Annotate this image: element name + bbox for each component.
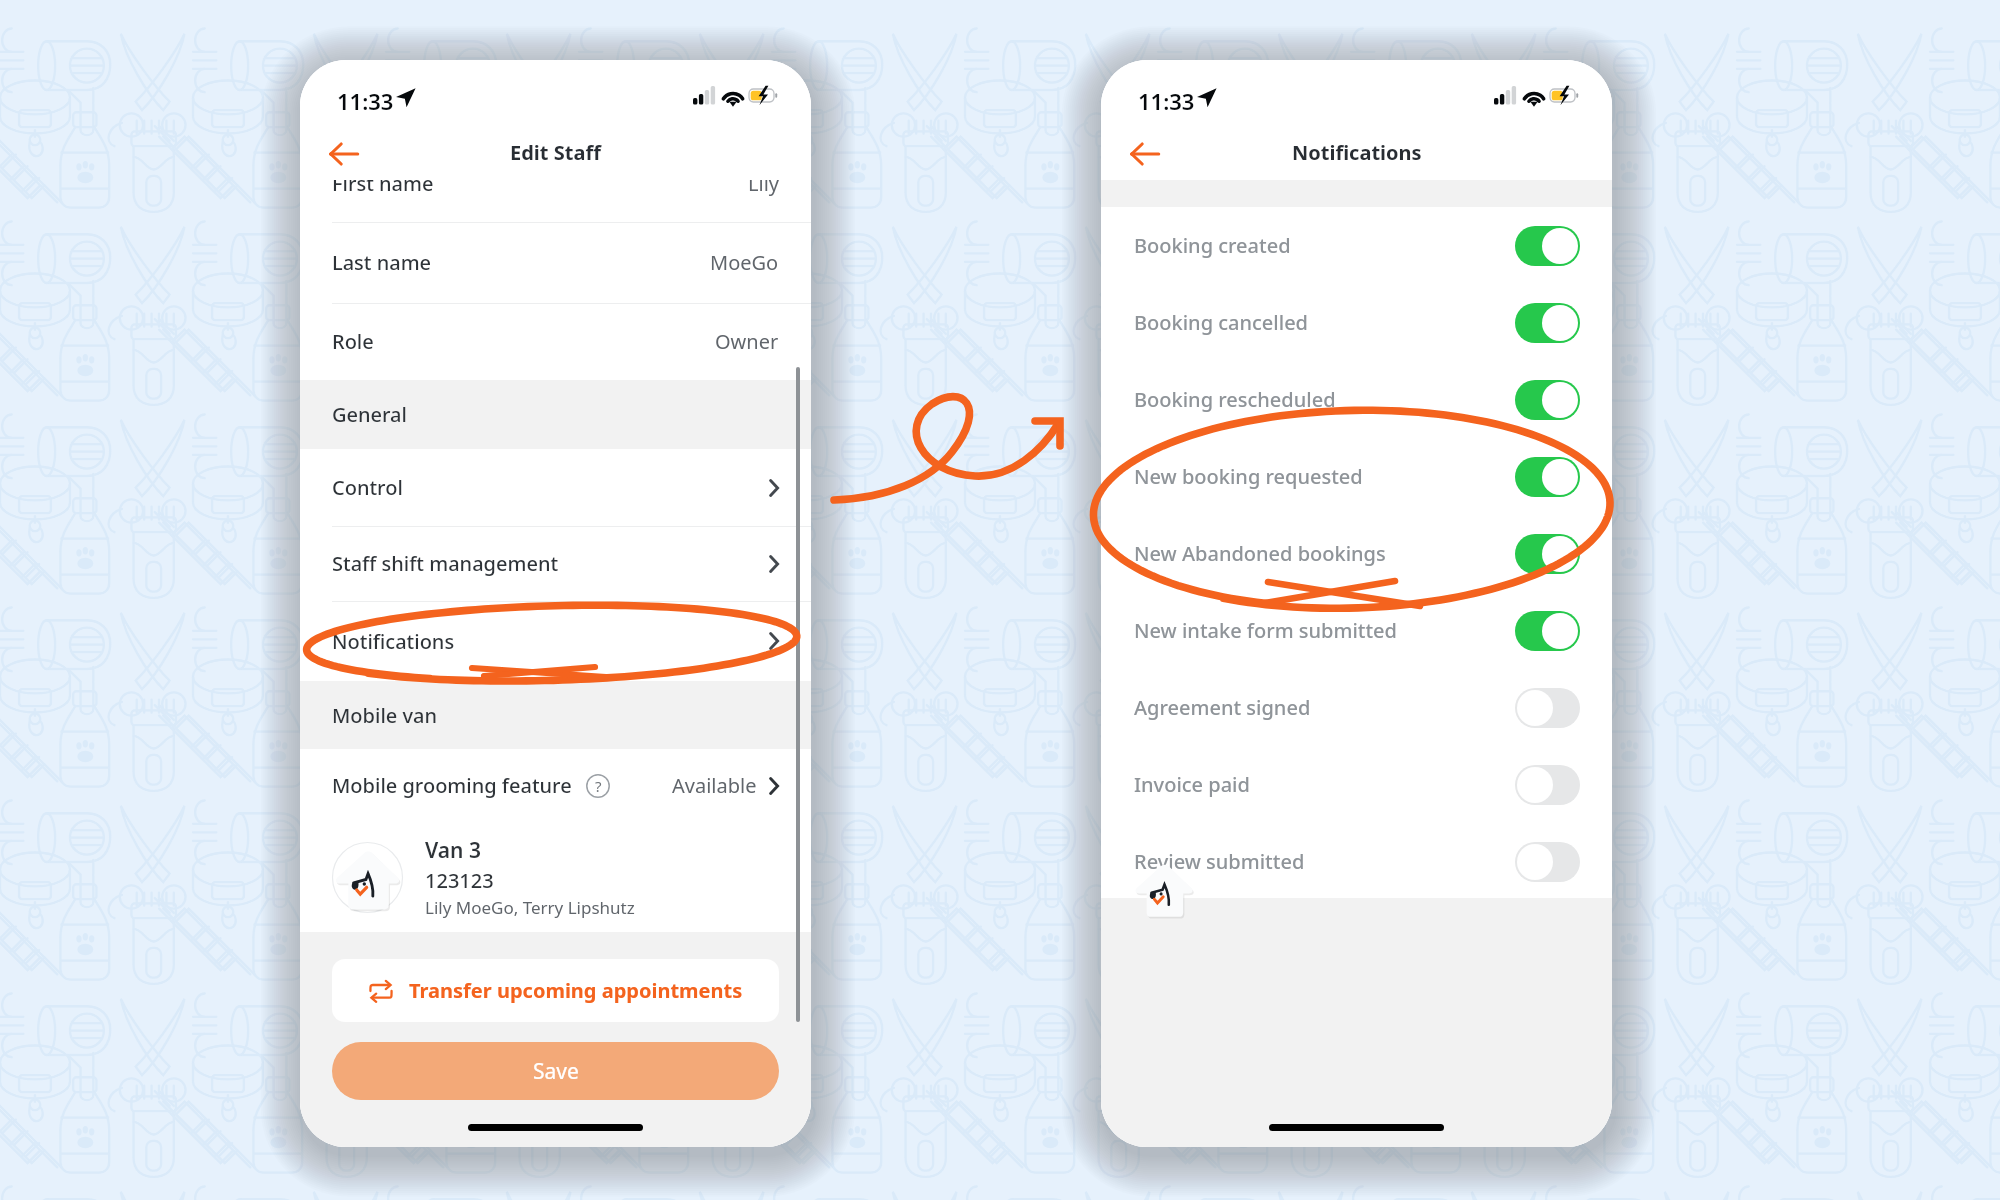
button[interactable]: Notifications [300, 601, 811, 681]
staticText: Booking created [1134, 232, 1291, 259]
button[interactable]: New intake form submitted [1101, 592, 1612, 669]
staticText: Mobile grooming feature [332, 772, 572, 799]
staticText: Booking cancelled [1134, 309, 1309, 336]
staticText: Role [332, 328, 374, 355]
staticText: Agreement signed [1134, 694, 1311, 721]
staticText: Booking rescheduled [1134, 386, 1336, 413]
staticText: Save [533, 1057, 579, 1086]
staticText: Review submitted [1134, 848, 1305, 875]
staticText: Transfer upcoming appointments [409, 977, 743, 1004]
button[interactable]: Invoice paid [1101, 746, 1612, 823]
staticText: Notifications [1292, 139, 1422, 166]
staticText: Last name [332, 249, 432, 276]
staticText: Lily MoeGo, Terry Lipshutz [425, 896, 635, 919]
staticText: MoeGo [710, 249, 779, 276]
button[interactable]: Off [1515, 842, 1580, 882]
staticText: New intake form submitted [1134, 617, 1397, 644]
staticText: New booking requested [1134, 463, 1363, 490]
button[interactable]: On [1515, 457, 1580, 497]
button[interactable]: Booking created [1101, 207, 1612, 284]
staticText: Control [332, 474, 403, 501]
staticText: Available [672, 772, 757, 799]
button[interactable]: Role [300, 303, 811, 380]
button[interactable]: First name [300, 144, 811, 222]
staticText: Lily [748, 170, 779, 197]
button[interactable]: Back [322, 132, 366, 176]
button[interactable]: New Abandoned bookings [1101, 515, 1612, 592]
staticText: Edit Staff [510, 139, 601, 166]
button[interactable]: Van 3 [307, 822, 811, 932]
button[interactable]: Control [300, 449, 811, 526]
button[interactable]: Booking rescheduled [1101, 361, 1612, 438]
button[interactable]: Save [332, 1042, 779, 1100]
staticText: Staff shift management [332, 550, 559, 577]
staticText: Van 3 [425, 836, 481, 865]
staticText: Owner [715, 328, 779, 355]
button[interactable]: Last name [300, 222, 811, 303]
button[interactable]: Back [1123, 132, 1167, 176]
staticText: General [332, 401, 407, 428]
staticText: First name [332, 170, 434, 197]
button[interactable]: Staff shift management [300, 526, 811, 601]
button[interactable]: Transfer upcoming appointments [332, 959, 779, 1022]
button[interactable]: Agreement signed [1101, 669, 1612, 746]
button[interactable]: Mobile grooming feature [300, 749, 811, 822]
button[interactable]: On [1515, 611, 1580, 651]
button[interactable]: Booking cancelled [1101, 284, 1612, 361]
staticText: Invoice paid [1134, 771, 1250, 798]
button[interactable]: On [1515, 380, 1580, 420]
button[interactable]: On [1515, 534, 1580, 574]
staticText: ? [595, 776, 602, 796]
staticText: New Abandoned bookings [1134, 540, 1386, 567]
button[interactable]: New booking requested [1101, 438, 1612, 515]
button[interactable]: Review submitted [1101, 823, 1612, 900]
staticText: 11:33 [337, 86, 394, 116]
staticText: 11:33 [1138, 86, 1195, 116]
button[interactable]: Off [1515, 765, 1580, 805]
button[interactable]: On [1515, 226, 1580, 266]
staticText: 123123 [425, 867, 494, 894]
button[interactable]: On [1515, 303, 1580, 343]
staticText: Notifications [332, 628, 455, 655]
staticText: Mobile van [332, 702, 437, 729]
button[interactable]: Off [1515, 688, 1580, 728]
